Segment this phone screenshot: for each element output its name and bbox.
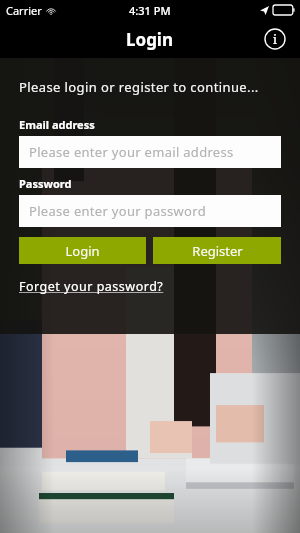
staticText: i [273, 31, 277, 47]
button[interactable]: Please enter your email address [19, 136, 281, 168]
button[interactable]: Please enter your password [19, 195, 281, 227]
button[interactable]: Register [153, 237, 281, 264]
staticText: Please enter your password [29, 202, 206, 220]
staticText: Login [65, 242, 100, 260]
staticText: Password [19, 176, 72, 191]
staticText: Register [192, 242, 243, 260]
staticText: Login [126, 28, 174, 51]
button[interactable]: Login [19, 237, 146, 264]
staticText: Carrier [6, 3, 42, 18]
staticText: 4:31 PM [129, 3, 171, 18]
button[interactable]: Forget your password? [19, 278, 164, 295]
staticText: Please enter your email address [29, 143, 234, 161]
staticText: Email address [19, 117, 95, 132]
button[interactable]: Info [263, 27, 287, 51]
staticText: Forget your password? [19, 278, 164, 295]
staticText: Please login or register to continue... [19, 78, 259, 96]
